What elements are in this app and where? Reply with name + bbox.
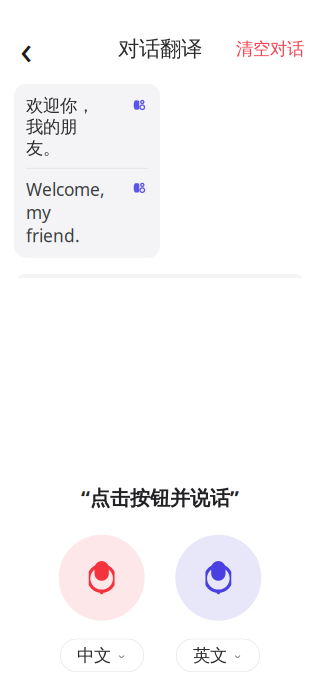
button[interactable]: Back [6,29,46,69]
button[interactable]: 清空对话 [226,29,314,69]
staticText: 英文 [193,645,227,666]
staticText: ⌄ [116,646,127,661]
staticText: Welcome, my friend. [26,178,105,247]
button[interactable]: Record Chinese [59,535,145,621]
button[interactable]: Play audio [128,178,148,198]
button[interactable]: 英文 [176,639,260,672]
staticText: 对话翻译 [118,36,202,62]
staticText: 欢迎你，我的朋友。 [26,95,94,159]
button[interactable]: Play audio [128,95,148,115]
staticText: ‹ [20,22,32,75]
button[interactable]: 中文 [60,639,144,672]
staticText: ⌄ [232,646,243,661]
staticText: “点击按钮并说话” [81,484,239,511]
staticText: 中文 [77,645,111,666]
button[interactable]: Record English [175,535,261,621]
staticText: 清空对话 [236,38,304,60]
